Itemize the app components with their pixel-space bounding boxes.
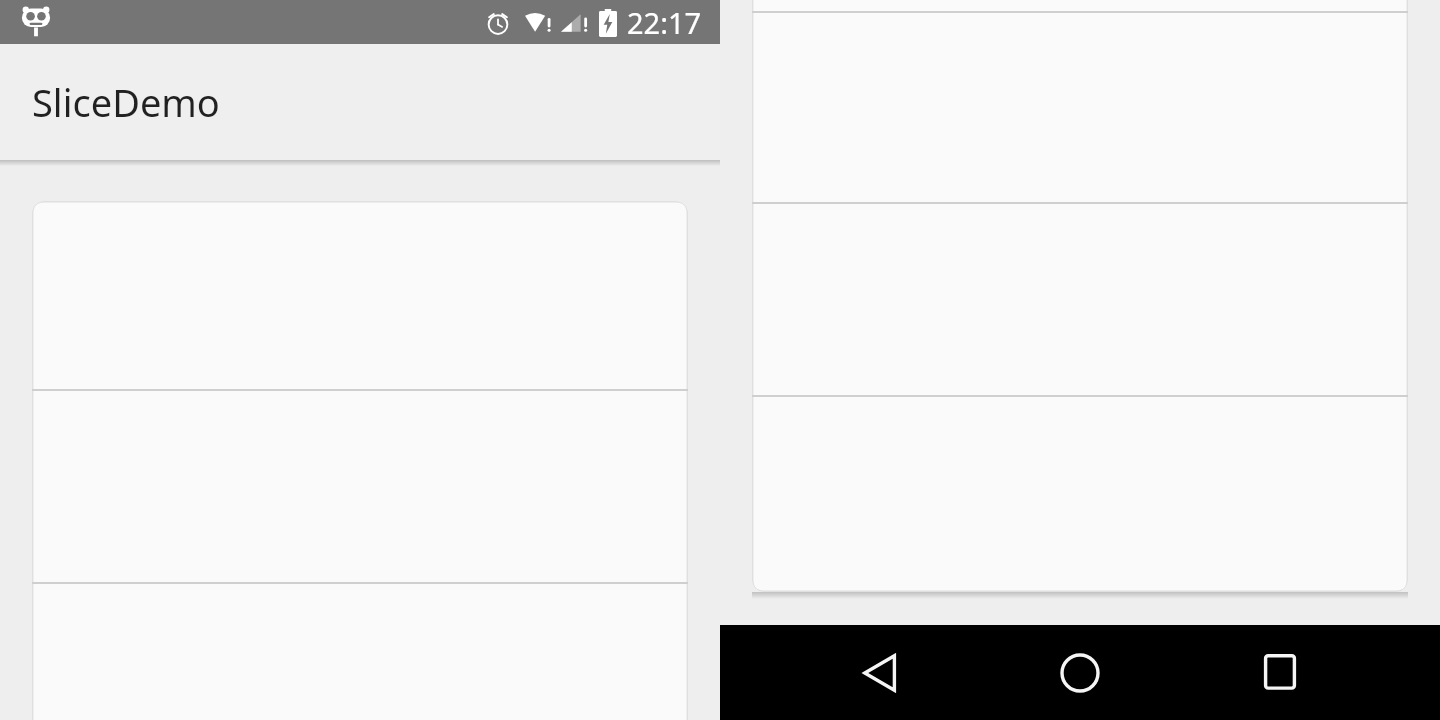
button[interactable] [752, 0, 1408, 592]
staticText: 22:17 [627, 3, 702, 42]
button[interactable]: Home [1040, 633, 1120, 713]
button[interactable]: Back [840, 633, 920, 713]
button[interactable]: Recent apps [1240, 633, 1320, 713]
staticText: SliceDemo [32, 76, 220, 128]
button[interactable] [32, 201, 688, 720]
